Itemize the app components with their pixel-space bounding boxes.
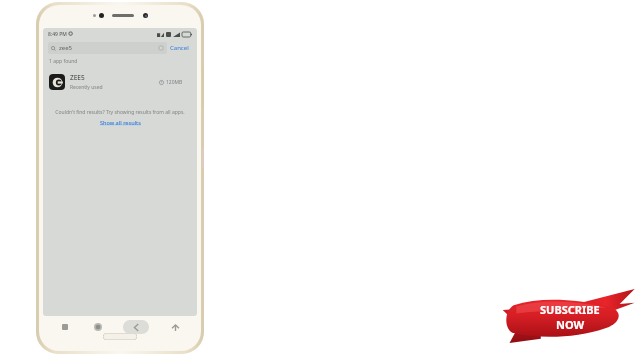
button[interactable]: Home	[91, 320, 105, 334]
button[interactable]: zee5	[48, 42, 167, 54]
staticText: ZEE5	[70, 73, 85, 82]
button[interactable]: Recents	[58, 320, 72, 334]
staticText: NOW	[556, 317, 585, 332]
staticText: 120MB	[166, 79, 183, 86]
button[interactable]: Up	[168, 320, 182, 334]
button[interactable]: Back	[123, 320, 149, 334]
staticText: Cancel	[170, 44, 189, 52]
button[interactable]: ZEE5	[43, 71, 197, 93]
staticText: Couldn't find results? Try showing resul…	[47, 109, 193, 116]
staticText: 1 app found	[49, 58, 78, 65]
button[interactable]: Cancel	[167, 42, 192, 54]
staticText: Recently used	[70, 84, 103, 91]
staticText: Show all results	[100, 119, 141, 126]
button[interactable]: Show all results	[96, 118, 145, 127]
staticText: SUBSCRIBE	[540, 302, 600, 317]
staticText: 8:49 PM	[48, 31, 67, 38]
staticText: zee5	[59, 44, 73, 52]
button[interactable]: Subscribe Now	[500, 286, 636, 346]
